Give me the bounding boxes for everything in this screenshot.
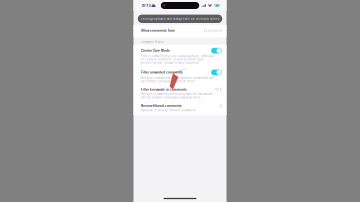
button[interactable]: Filter keywords in comments bbox=[133, 85, 226, 101]
button[interactable]: Creator Care Mode bbox=[133, 45, 226, 67]
button[interactable]: Allow comments from bbox=[133, 25, 226, 37]
staticText: Review filtered comments bbox=[141, 104, 182, 108]
staticText: Approve or delete filtered comments bbox=[141, 109, 195, 112]
staticText: Filter unwanted comments bbox=[141, 71, 183, 74]
staticText: Settings updated and changes will be ref… bbox=[141, 17, 219, 20]
staticText: Allow comments from bbox=[141, 29, 175, 32]
button[interactable]: Review filtered comments bbox=[133, 101, 226, 115]
staticText: Everyone bbox=[204, 29, 219, 32]
staticText: Creator Care Mode bbox=[141, 49, 170, 52]
staticText: Filter comments that are nagging/hate, o… bbox=[141, 55, 214, 64]
staticText: Recent comments containing specific keyw… bbox=[141, 92, 212, 99]
staticText: Recent comments that are spam or unwante… bbox=[141, 76, 214, 83]
staticText: Filter keywords in comments bbox=[141, 88, 187, 91]
button[interactable]: Filter unwanted comments bbox=[133, 67, 226, 85]
staticText: 07:13 bbox=[141, 3, 150, 8]
staticText: Comment filters bbox=[141, 40, 163, 43]
staticText: Off bbox=[215, 88, 219, 91]
